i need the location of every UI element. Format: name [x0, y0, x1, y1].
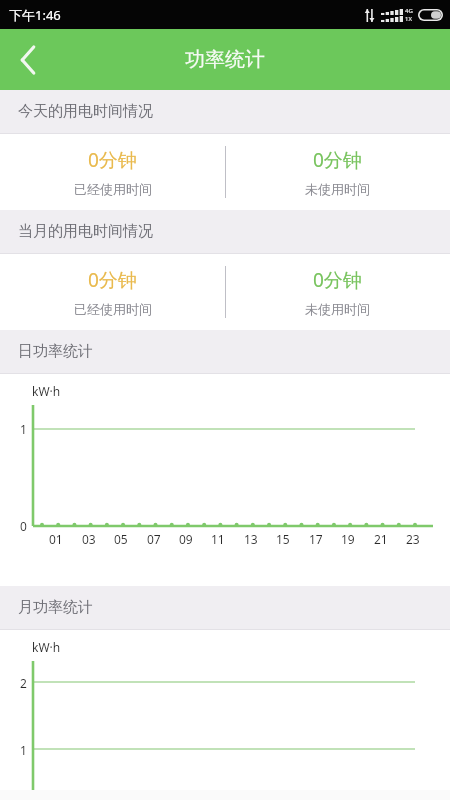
button[interactable]: 0分钟 — [225, 134, 450, 210]
staticText: 23 — [406, 531, 420, 547]
staticText: 11 — [211, 531, 225, 547]
staticText: 下午1:46 — [9, 6, 61, 24]
staticText: 当月的用电时间情况 — [18, 222, 153, 241]
staticText: kW·h — [32, 639, 61, 655]
staticText: kW·h — [32, 383, 61, 399]
staticText: 今天的用电时间情况 — [18, 102, 153, 121]
button[interactable]: 0分钟 — [225, 254, 450, 330]
staticText: 0 — [20, 518, 27, 534]
staticText: 未使用时间 — [305, 181, 370, 197]
staticText: 0分钟 — [313, 267, 362, 293]
staticText: 09 — [179, 531, 193, 547]
staticText: 4G — [405, 7, 413, 15]
staticText: 日功率统计 — [18, 342, 93, 361]
staticText: 19 — [341, 531, 355, 547]
staticText: 功率统计 — [185, 47, 265, 72]
staticText: 1 — [20, 421, 27, 437]
staticText: 21 — [374, 531, 388, 547]
staticText: 0分钟 — [88, 267, 137, 293]
button[interactable]: Back — [0, 29, 56, 90]
staticText: 13 — [244, 531, 258, 547]
staticText: 15 — [276, 531, 290, 547]
staticText: 已经使用时间 — [74, 181, 152, 197]
button[interactable]: 0分钟 — [0, 134, 225, 210]
staticText: 1 — [20, 742, 27, 758]
staticText: 月功率统计 — [18, 598, 93, 617]
staticText: 0分钟 — [88, 147, 137, 173]
staticText: 1X — [405, 15, 412, 23]
staticText: 05 — [114, 531, 128, 547]
staticText: 未使用时间 — [305, 301, 370, 317]
staticText: 2 — [20, 675, 27, 691]
staticText: 17 — [309, 531, 323, 547]
staticText: 0分钟 — [313, 147, 362, 173]
staticText: 01 — [49, 531, 63, 547]
staticText: 07 — [147, 531, 161, 547]
staticText: 已经使用时间 — [74, 301, 152, 317]
button[interactable]: 0分钟 — [0, 254, 225, 330]
staticText: 03 — [82, 531, 96, 547]
